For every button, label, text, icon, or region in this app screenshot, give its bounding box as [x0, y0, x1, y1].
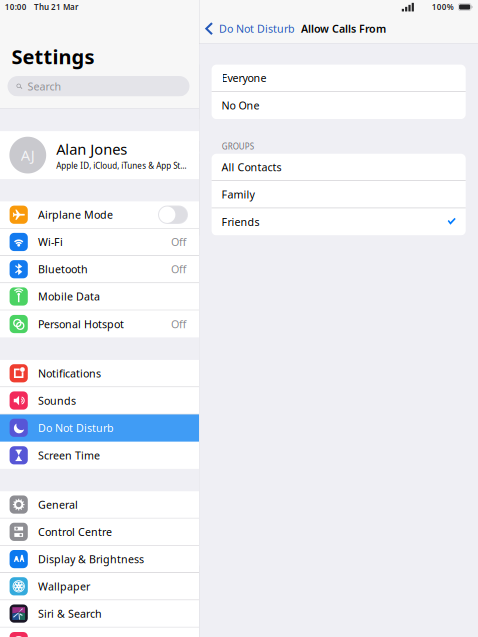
staticText: Do Not Disturb — [219, 21, 295, 36]
staticText: Display & Brightness — [38, 552, 144, 566]
staticText: Screen Time — [38, 448, 100, 462]
staticText: General — [38, 497, 78, 512]
staticText: Everyone — [221, 71, 266, 85]
staticText: Bluetooth — [38, 262, 88, 276]
button[interactable]: Wallpaper — [0, 573, 199, 600]
button[interactable]: Bluetooth — [0, 256, 199, 283]
staticText: Off — [171, 235, 186, 249]
button[interactable]: Sounds — [0, 387, 199, 414]
staticText: Airplane Mode — [38, 208, 113, 222]
staticText: Control Centre — [38, 525, 112, 539]
staticText: Siri & Search — [38, 606, 102, 621]
button[interactable]: All Contacts — [212, 154, 466, 181]
button[interactable]: Family — [212, 181, 466, 208]
button[interactable]: Siri & Search — [0, 600, 199, 627]
staticText: Allow Calls From — [301, 21, 386, 36]
staticText: Settings — [11, 43, 94, 70]
staticText: Apple ID, iCloud, iTunes & App St… — [56, 160, 186, 171]
staticText: Do Not Disturb — [38, 421, 114, 435]
button[interactable]: Do Not Disturb — [200, 16, 295, 40]
staticText: Friends — [221, 215, 259, 229]
staticText: Notifications — [38, 366, 101, 380]
staticText: No One — [221, 98, 259, 113]
button[interactable]: No One — [212, 92, 466, 119]
button[interactable]: General — [0, 491, 199, 518]
button[interactable]: Mobile Data — [0, 283, 199, 310]
staticText: Off — [171, 262, 186, 276]
button[interactable]: Screen Time — [0, 442, 199, 469]
staticText: AJ — [21, 145, 35, 165]
button[interactable]: Everyone — [212, 65, 466, 92]
staticText: 10:00 — [5, 2, 27, 12]
button[interactable]: Display & Brightness — [0, 546, 199, 573]
staticText: Search — [27, 79, 61, 93]
button[interactable]: Do Not Disturb — [0, 414, 199, 442]
button[interactable]: Personal Hotspot — [0, 310, 199, 338]
button[interactable]: AJ — [0, 131, 199, 179]
staticText: All Contacts — [221, 160, 281, 174]
button[interactable]: Notifications — [0, 360, 199, 387]
button[interactable]: Search — [0, 76, 199, 96]
staticText: Off — [171, 317, 186, 331]
staticText: Wi-Fi — [38, 235, 63, 249]
button[interactable]: Wi-Fi — [0, 229, 199, 256]
staticText: Thu 21 Mar — [34, 2, 78, 12]
staticText: Mobile Data — [38, 289, 100, 304]
staticText: Alan Jones — [56, 139, 127, 159]
staticText: Sounds — [38, 393, 76, 408]
button[interactable]: Airplane Mode — [0, 201, 199, 229]
staticText: GROUPS — [222, 141, 254, 152]
button[interactable]: Control Centre — [0, 518, 199, 546]
staticText: Personal Hotspot — [38, 317, 124, 331]
staticText: 100% — [432, 2, 454, 12]
button[interactable]: Touch ID & Passcode — [0, 627, 199, 637]
button[interactable]: Friends — [212, 208, 466, 235]
staticText: Family — [221, 187, 254, 201]
staticText: Wallpaper — [38, 579, 90, 593]
